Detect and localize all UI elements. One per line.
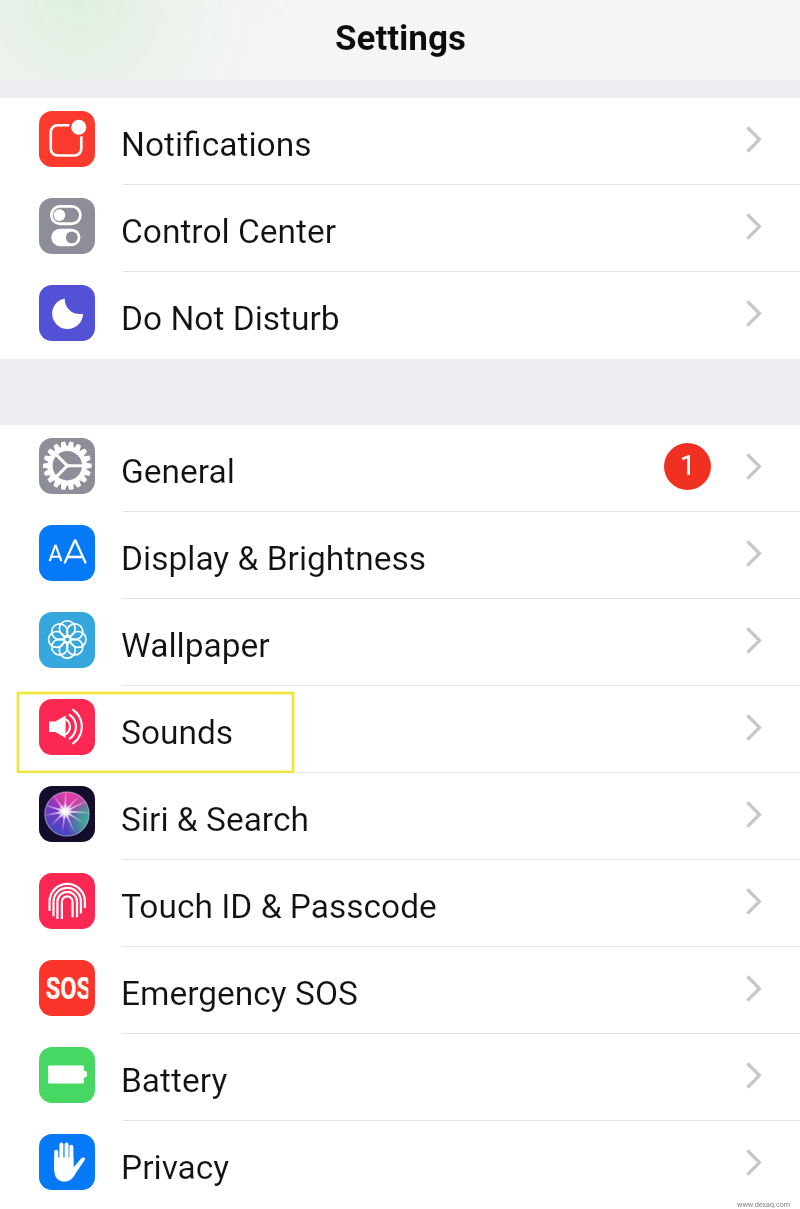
staticText: www.dexaq.com: [737, 1200, 791, 1208]
button[interactable]: General: [0, 425, 800, 512]
button[interactable]: SOS: [0, 947, 800, 1034]
button[interactable]: Wallpaper: [0, 599, 800, 686]
button[interactable]: Do Not Disturb: [0, 272, 800, 359]
staticText: Privacy: [121, 1148, 230, 1187]
button[interactable]: Battery: [0, 1034, 800, 1121]
button[interactable]: Touch ID & Passcode: [0, 860, 800, 947]
button[interactable]: Display & Brightness: [0, 512, 800, 599]
staticText: Control Center: [121, 212, 337, 251]
button[interactable]: Sounds: [0, 686, 800, 773]
button[interactable]: Control Center: [0, 185, 800, 272]
staticText: Sounds: [121, 713, 234, 752]
button[interactable]: Siri & Search: [0, 773, 800, 860]
staticText: Touch ID & Passcode: [121, 887, 437, 926]
staticText: Notifications: [121, 125, 312, 164]
staticText: Do Not Disturb: [121, 299, 340, 338]
staticText: Siri & Search: [121, 800, 309, 839]
staticText: Wallpaper: [121, 626, 270, 665]
button[interactable]: Privacy: [0, 1121, 800, 1208]
staticText: Display & Brightness: [121, 539, 427, 578]
staticText: General: [121, 452, 235, 491]
staticText: Emergency SOS: [121, 974, 358, 1013]
button[interactable]: Notifications: [0, 98, 800, 185]
staticText: 1: [680, 449, 696, 482]
staticText: Battery: [121, 1061, 228, 1100]
staticText: SOS: [46, 970, 88, 1006]
staticText: Settings: [335, 18, 466, 59]
